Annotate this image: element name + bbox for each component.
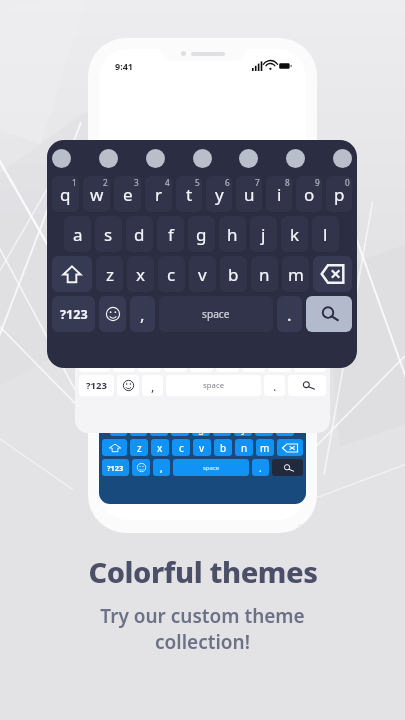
button[interactable]: n	[235, 439, 253, 456]
button[interactable]: a	[64, 216, 91, 252]
button[interactable]: f	[171, 419, 189, 436]
button[interactable]: l	[312, 216, 339, 252]
button[interactable]: q	[52, 176, 79, 212]
button[interactable]: Search	[288, 375, 326, 396]
button[interactable]: p	[304, 303, 326, 324]
button[interactable]: v	[193, 439, 211, 456]
button[interactable]: t	[176, 176, 202, 212]
button[interactable]: j	[243, 327, 265, 348]
button[interactable]: Shift	[52, 256, 92, 292]
button[interactable]: q	[79, 303, 101, 324]
button[interactable]: Search	[272, 459, 303, 476]
button[interactable]: i	[254, 303, 276, 324]
button[interactable]: a	[91, 327, 114, 348]
button[interactable]: c	[172, 439, 190, 456]
button[interactable]: s	[95, 216, 122, 252]
button[interactable]: space	[159, 296, 273, 332]
button[interactable]: h	[219, 216, 246, 252]
button[interactable]: s	[130, 419, 147, 436]
button[interactable]: a	[110, 419, 127, 436]
button[interactable]: z	[113, 351, 135, 372]
button[interactable]: ,	[142, 375, 163, 396]
button[interactable]: k	[268, 327, 290, 348]
button[interactable]	[99, 149, 118, 168]
button[interactable]: k	[281, 216, 308, 252]
button[interactable]: Backspace	[313, 256, 352, 292]
button[interactable]: v	[190, 351, 213, 372]
button[interactable]: y	[206, 176, 232, 212]
button[interactable]: w	[83, 176, 110, 212]
button[interactable]: o	[296, 176, 322, 212]
button[interactable]: l	[276, 419, 294, 436]
button[interactable]: .	[277, 296, 302, 332]
button[interactable]: .	[264, 375, 285, 396]
button[interactable]: space	[173, 459, 249, 476]
button[interactable]: m	[256, 439, 274, 456]
button[interactable]: b	[220, 256, 247, 292]
button[interactable]: r	[154, 303, 176, 324]
button[interactable]: ?123	[102, 459, 129, 476]
button[interactable]: d	[126, 216, 153, 252]
button[interactable]: ?123	[79, 375, 114, 396]
button[interactable]: Shift	[79, 351, 110, 372]
button[interactable]	[286, 149, 305, 168]
button[interactable]: Emoji	[132, 459, 150, 476]
button[interactable]: v	[189, 256, 216, 292]
button[interactable]: g	[193, 327, 215, 348]
button[interactable]: Emoji	[117, 375, 139, 396]
button[interactable]: m	[282, 256, 309, 292]
button[interactable]: x	[138, 351, 161, 372]
button[interactable]: b	[214, 439, 232, 456]
button[interactable]: s	[117, 327, 140, 348]
button[interactable]	[146, 149, 165, 168]
button[interactable]: z	[96, 256, 123, 292]
button[interactable]: Backspace	[277, 439, 303, 456]
button[interactable]: ,	[153, 459, 170, 476]
button[interactable]: d	[143, 327, 165, 348]
button[interactable]: z	[130, 439, 148, 456]
button[interactable]: x	[151, 439, 169, 456]
button[interactable]: f	[157, 216, 184, 252]
button[interactable]: w	[104, 303, 126, 324]
button[interactable]: i	[266, 176, 292, 212]
button[interactable]: d	[150, 419, 168, 436]
button[interactable]	[52, 149, 71, 168]
button[interactable]: j	[234, 419, 252, 436]
button[interactable]: .	[252, 459, 269, 476]
button[interactable]: y	[204, 303, 226, 324]
button[interactable]: g	[188, 216, 215, 252]
button[interactable]	[333, 149, 352, 168]
button[interactable]: ,	[130, 296, 155, 332]
button[interactable]: r	[145, 176, 172, 212]
button[interactable]: c	[164, 351, 187, 372]
button[interactable]: k	[255, 419, 273, 436]
button[interactable]: Emoji	[99, 296, 126, 332]
button[interactable]: p	[326, 176, 352, 212]
button[interactable]: x	[127, 256, 154, 292]
button[interactable]: u	[236, 176, 262, 212]
button[interactable]: Backspace	[294, 351, 326, 372]
button[interactable]: space	[166, 375, 261, 396]
button[interactable]: h	[218, 327, 240, 348]
button[interactable]: m	[268, 351, 291, 372]
button[interactable]: e	[129, 303, 151, 324]
button[interactable]: n	[251, 256, 278, 292]
button[interactable]: l	[293, 327, 315, 348]
button[interactable]: Search	[306, 296, 352, 332]
button[interactable]: f	[168, 327, 190, 348]
button[interactable]: b	[216, 351, 239, 372]
button[interactable]	[193, 149, 212, 168]
button[interactable]: e	[114, 176, 141, 212]
button[interactable]: h	[213, 419, 231, 436]
button[interactable]: Shift	[102, 439, 127, 456]
